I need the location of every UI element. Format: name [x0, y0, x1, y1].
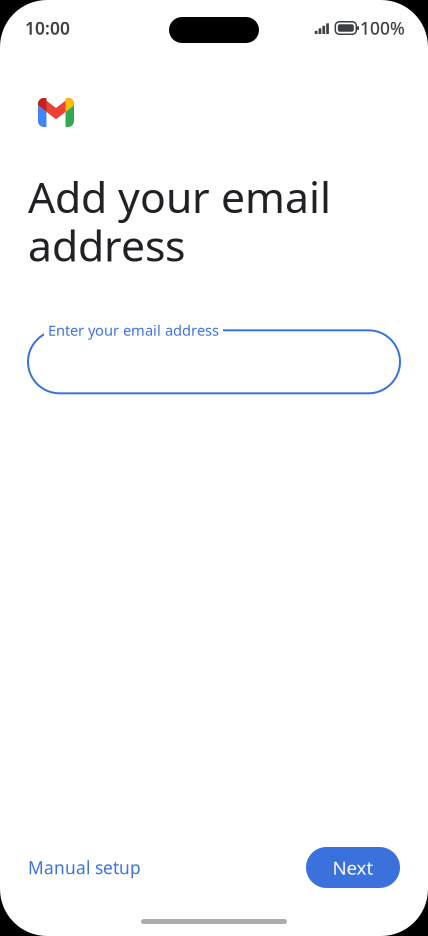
staticText: Enter your email address — [48, 320, 219, 340]
staticText: Add your email address — [28, 168, 331, 273]
staticText: 100% — [360, 16, 405, 39]
button[interactable]: Manual setup — [20, 844, 149, 891]
staticText: Manual setup — [28, 856, 141, 879]
button[interactable]: Next — [306, 847, 400, 888]
staticText: Next — [332, 855, 373, 880]
button[interactable]: Enter your email address — [28, 319, 400, 394]
staticText: 10:00 — [25, 16, 70, 39]
